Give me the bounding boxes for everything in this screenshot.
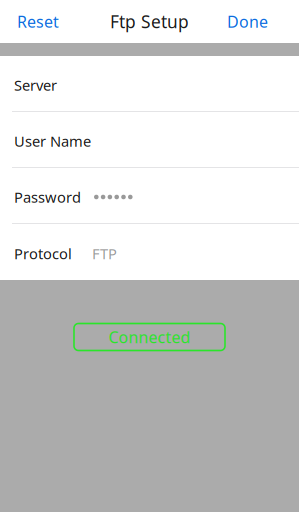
staticText: Password [14,187,81,207]
button[interactable]: User Name [0,112,299,168]
staticText: FTP [92,244,117,263]
button[interactable]: Connected [74,323,225,350]
staticText: Connected [108,326,190,348]
button[interactable]: Password [0,168,299,224]
button[interactable]: Protocol [0,224,299,280]
staticText: Reset [17,11,59,32]
button[interactable]: Server [0,56,299,112]
staticText: Ftp Setup [110,10,189,33]
button[interactable]: Reset [0,0,67,43]
staticText: User Name [14,131,91,151]
staticText: Done [227,11,268,32]
button[interactable]: Done [219,0,299,43]
staticText: Server [14,75,57,95]
staticText: Protocol [14,244,72,263]
